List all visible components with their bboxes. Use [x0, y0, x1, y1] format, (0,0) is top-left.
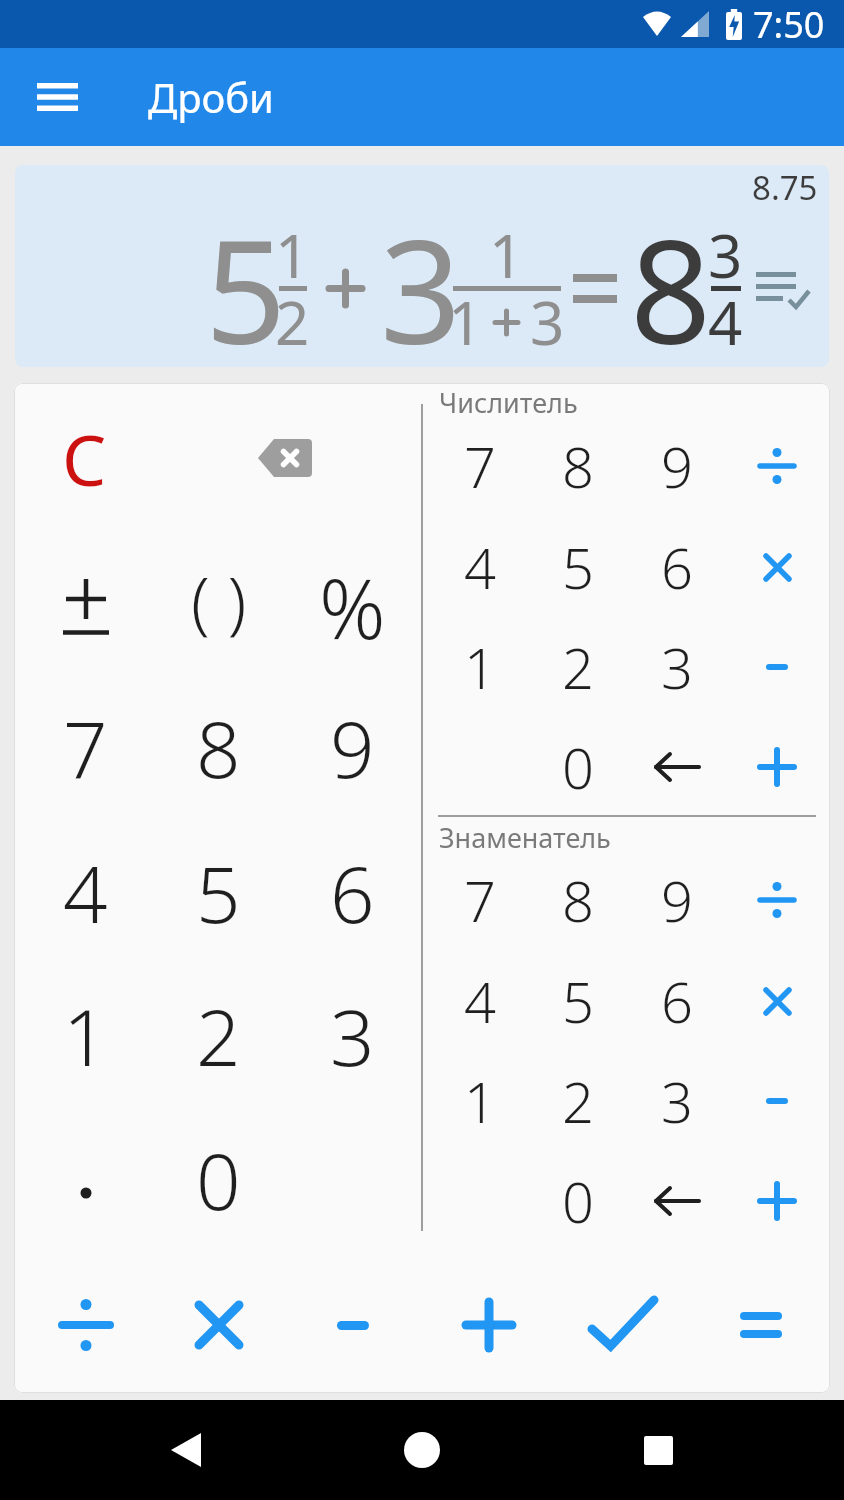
button[interactable]: ( )	[152, 540, 285, 660]
button[interactable]	[728, 850, 826, 950]
button[interactable]	[694, 1275, 827, 1375]
staticText: 2	[562, 629, 594, 705]
staticText: 2	[275, 281, 310, 363]
staticText: 2	[562, 1063, 594, 1139]
staticText: 1	[63, 983, 108, 1089]
button[interactable]: 1	[431, 1051, 529, 1151]
button[interactable]: 6	[628, 517, 726, 617]
button[interactable]	[728, 517, 826, 617]
staticText: 4	[464, 963, 496, 1039]
staticText: 1	[275, 214, 310, 296]
button[interactable]: 3	[628, 1051, 726, 1151]
button[interactable]	[728, 617, 826, 717]
button[interactable]	[728, 1151, 826, 1251]
button[interactable]	[19, 1133, 152, 1253]
staticText: Дроби	[148, 70, 274, 124]
button[interactable]: 0	[529, 1151, 627, 1251]
button[interactable]: 4	[431, 517, 529, 617]
button[interactable]: 7	[431, 416, 529, 516]
button[interactable]	[29, 69, 85, 125]
button[interactable]: 4	[19, 833, 152, 953]
button[interactable]: 3	[286, 976, 419, 1096]
button[interactable]: 4	[431, 951, 529, 1051]
button[interactable]	[220, 413, 350, 503]
staticText: 0	[562, 1163, 594, 1239]
staticText: 1	[489, 214, 524, 296]
button[interactable]: 1	[19, 976, 152, 1096]
button[interactable]: 7	[431, 850, 529, 950]
button[interactable]	[362, 1400, 482, 1500]
button[interactable]: 6	[286, 833, 419, 953]
button[interactable]: 7	[19, 688, 152, 808]
staticText: 6	[661, 963, 693, 1039]
staticText: 7	[464, 862, 496, 938]
button[interactable]: 1	[431, 617, 529, 717]
staticText: 9	[661, 428, 693, 504]
button[interactable]: 2	[152, 976, 285, 1096]
staticText: 8	[630, 192, 712, 367]
staticText: 9	[661, 862, 693, 938]
button[interactable]	[286, 1275, 419, 1375]
button[interactable]	[19, 1275, 152, 1375]
button[interactable]	[728, 416, 826, 516]
button[interactable]: 8	[529, 416, 627, 516]
staticText: 1	[464, 1063, 496, 1139]
staticText: 8.75	[752, 165, 818, 210]
button[interactable]: 9	[628, 416, 726, 516]
staticText: 3	[708, 214, 743, 296]
staticText: 5	[196, 840, 241, 946]
button[interactable]: 5	[529, 951, 627, 1051]
staticText: 0	[196, 1127, 241, 1233]
staticText: C	[62, 411, 107, 506]
staticText: 8	[562, 428, 594, 504]
button[interactable]	[152, 1275, 285, 1375]
button[interactable]: 2	[529, 617, 627, 717]
staticText: 2	[196, 983, 241, 1089]
button[interactable]	[19, 547, 152, 667]
staticText: 1	[464, 629, 496, 705]
button[interactable]: 0	[529, 717, 627, 817]
button[interactable]: 0	[152, 1120, 285, 1240]
staticText: 8	[562, 862, 594, 938]
staticText: 7	[63, 695, 108, 801]
staticText: 5	[562, 963, 594, 1039]
staticText: 1	[448, 281, 483, 363]
button[interactable]	[126, 1400, 246, 1500]
staticText: 8	[196, 695, 241, 801]
staticText: 7	[464, 428, 496, 504]
staticText: 7:50	[753, 0, 825, 48]
button[interactable]: 3	[628, 617, 726, 717]
button[interactable]: 5	[152, 833, 285, 953]
button[interactable]	[422, 1275, 555, 1375]
staticText: 4	[708, 281, 743, 363]
staticText: 6	[330, 840, 375, 946]
button[interactable]	[728, 1051, 826, 1151]
staticText: 5	[205, 192, 287, 367]
button[interactable]: 8	[152, 688, 285, 808]
button[interactable]	[628, 1151, 726, 1251]
button[interactable]	[728, 717, 826, 817]
button[interactable]	[756, 270, 810, 308]
staticText: 3	[380, 192, 462, 367]
staticText: 3	[661, 1063, 693, 1139]
button[interactable]: 8	[529, 850, 627, 950]
staticText: 5	[562, 529, 594, 605]
staticText: 3	[661, 629, 693, 705]
staticText: 3	[530, 281, 565, 363]
button[interactable]: 6	[628, 951, 726, 1051]
button[interactable]: %	[286, 547, 419, 667]
staticText: %	[319, 551, 386, 663]
button[interactable]: 9	[286, 688, 419, 808]
button[interactable]	[628, 717, 726, 817]
button[interactable]: 9	[628, 850, 726, 950]
button[interactable]	[728, 951, 826, 1051]
button[interactable]	[556, 1275, 689, 1375]
staticText: 4	[464, 529, 496, 605]
button[interactable]: 2	[529, 1051, 627, 1151]
button[interactable]: 5	[529, 517, 627, 617]
button[interactable]: C	[14, 398, 159, 518]
staticText: 9	[330, 695, 375, 801]
button[interactable]	[598, 1400, 718, 1500]
staticText: 4	[63, 840, 108, 946]
staticText: Знаменатель	[439, 819, 611, 856]
